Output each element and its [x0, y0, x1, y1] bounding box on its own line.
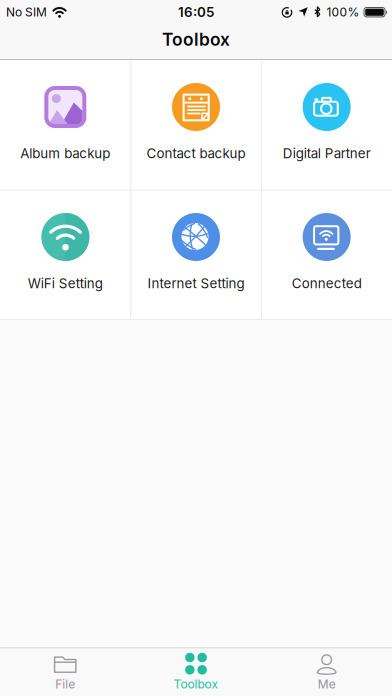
button[interactable]: File [0, 648, 131, 696]
staticText: Digital Partner [283, 145, 371, 161]
button[interactable]: Internet Setting [131, 190, 261, 320]
staticText: Toolbox [162, 29, 230, 50]
staticText: Toolbox [173, 677, 218, 691]
staticText: 16:05 [178, 4, 214, 20]
button[interactable]: Connected [261, 190, 392, 320]
button[interactable]: Toolbox [131, 648, 261, 696]
button[interactable]: Contact backup [131, 60, 261, 190]
staticText: File [55, 677, 75, 691]
staticText: Internet Setting [147, 275, 244, 291]
button[interactable]: Album backup [0, 60, 131, 190]
button[interactable]: Me [261, 648, 392, 696]
button[interactable]: Digital Partner [261, 60, 392, 190]
staticText: 100% [326, 5, 359, 19]
staticText: No SIM [6, 5, 47, 19]
staticText: Connected [292, 275, 362, 291]
staticText: Contact backup [146, 145, 245, 161]
staticText: WiFi Setting [28, 275, 103, 291]
staticText: Album backup [20, 145, 110, 161]
button[interactable]: WiFi Setting [0, 190, 131, 320]
staticText: Me [318, 677, 336, 691]
